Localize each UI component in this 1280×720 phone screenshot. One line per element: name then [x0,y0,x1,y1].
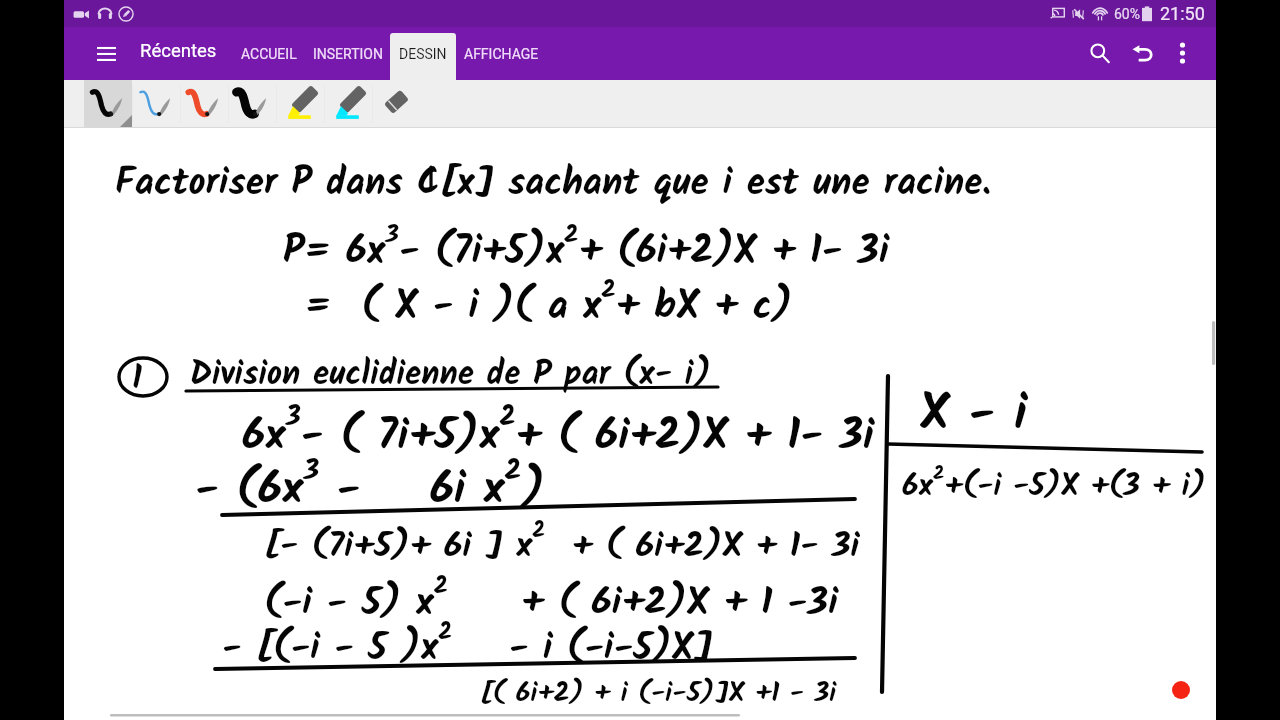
button[interactable]: Navigation menu [89,36,124,71]
button[interactable]: More options [1160,31,1204,75]
button[interactable]: Cyan highlighter [324,80,372,128]
button[interactable]: ACCUEIL [233,27,304,80]
button[interactable]: INSERTION [308,27,387,80]
button[interactable]: Undo [1121,31,1165,75]
staticText: 21:50 [1160,3,1205,24]
staticText: X - i [920,376,1028,456]
staticText: 6x3- ( 7i+5)x2+ ( 6i+2)X + 1- 3i [242,396,875,471]
button[interactable]: Red pen [180,80,228,128]
staticText: [- (7i+5)+ 6i ] x2 + ( 6i+2)X + 1- 3i [264,514,860,575]
button[interactable]: Blue pen [132,80,180,128]
staticText: (-i - 5) x2 + ( 6i+2)X + 1 -3i [264,567,839,634]
button[interactable]: Yellow highlighter [276,80,324,128]
staticText: - [(-i - 5 )x2 - i (-i-5)X] [222,614,713,679]
staticText: P= 6x3- (7i+5)x2+ (6i+2)X + 1- 3i [283,215,890,283]
button[interactable]: Search [1078,31,1122,75]
staticText: Récentes [140,40,217,62]
staticText: DESSIN [399,46,447,62]
staticText: INSERTION [313,46,383,62]
staticText: [( 6i+2) + i (-i-5)]X +1 - 3i [480,672,837,715]
staticText: Division euclidienne de P par (x- i) [190,349,711,402]
staticText: AFFICHAGE [464,46,539,62]
staticText: 6x2+(-i -5)X +(3 + i) [902,458,1206,512]
staticText: ACCUEIL [241,46,297,62]
staticText: 1 [132,353,142,406]
staticText: - (6x3 - 6i x2) [195,448,546,527]
staticText: 60% [1114,6,1140,22]
staticText: Factoriser P dans C[x] sachant que i est… [115,155,992,214]
button[interactable]: AFFICHAGE [460,27,542,80]
button[interactable]: Thick pen [228,80,276,128]
button[interactable]: Eraser [372,80,420,128]
staticText: = ( X - i )( a x2+ bX + c) [305,270,793,338]
button[interactable]: DESSIN [390,33,456,80]
button[interactable]: Black pen [84,80,132,128]
